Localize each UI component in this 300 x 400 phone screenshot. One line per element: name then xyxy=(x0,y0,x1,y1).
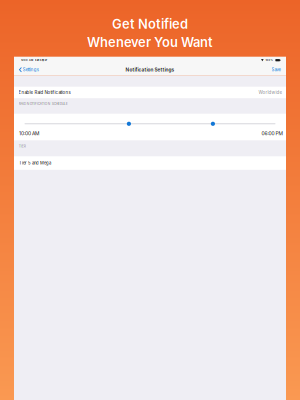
staticText: Worldwide xyxy=(258,90,282,95)
button[interactable]: Save xyxy=(266,64,286,76)
button[interactable]: Settings xyxy=(14,64,44,76)
staticText: 12:00 AM xyxy=(21,59,33,62)
button[interactable]: Tier 5 and Mega xyxy=(14,156,286,170)
staticText: Enable Raid Notifications xyxy=(18,90,70,95)
staticText: Save xyxy=(271,67,280,72)
staticText: Get Notified xyxy=(112,16,188,32)
staticText: RAID NOTIFICATION SCHEDULE xyxy=(19,102,68,106)
button[interactable]: Enable Raid Notifications xyxy=(14,87,286,98)
staticText: 100% xyxy=(266,59,273,62)
staticText: Tier 5 and Mega xyxy=(19,160,51,166)
staticText: Settings xyxy=(23,67,39,72)
staticText: Sun Sep 27 xyxy=(35,59,47,62)
staticText: TIER xyxy=(19,144,26,148)
staticText: Whenever You Want xyxy=(87,34,213,50)
staticText: Notification Settings xyxy=(125,67,174,73)
staticText: 10:00 AM xyxy=(19,131,39,137)
staticText: 06:00 PM xyxy=(261,131,282,137)
